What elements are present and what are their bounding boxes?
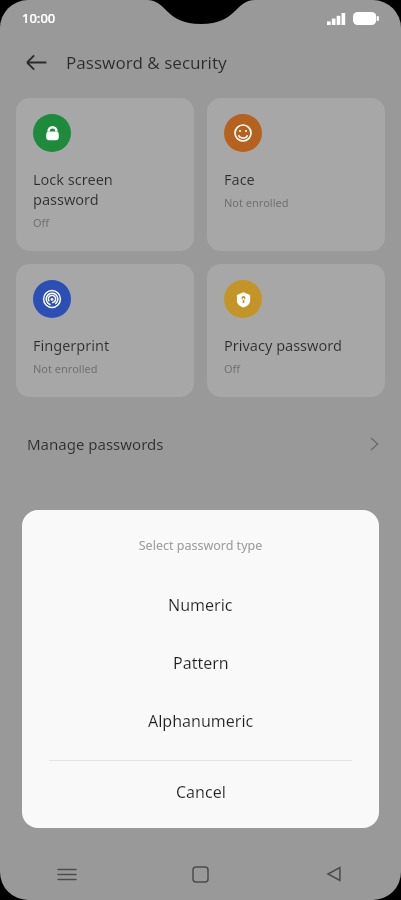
staticText: Privacy password xyxy=(224,335,342,355)
staticText: Off xyxy=(33,215,50,230)
staticText: Not enrolled xyxy=(33,361,98,376)
button[interactable]: Numeric xyxy=(22,576,379,634)
staticText: Lock screen password xyxy=(33,169,113,209)
button[interactable]: Back xyxy=(267,848,401,900)
staticText: Pattern xyxy=(173,652,229,674)
staticText: Off xyxy=(224,361,241,376)
button[interactable]: Recents xyxy=(0,848,133,900)
button[interactable]: Fingerprint xyxy=(16,264,194,397)
button[interactable]: Alphanumeric xyxy=(22,692,379,750)
button[interactable]: Lock screen password xyxy=(16,98,194,251)
staticText: Not enrolled xyxy=(224,195,289,210)
button[interactable]: Home xyxy=(133,848,267,900)
staticText: Cancel xyxy=(176,781,226,803)
staticText: Manage passwords xyxy=(27,434,164,454)
button[interactable]: Face xyxy=(207,98,385,251)
staticText: Face xyxy=(224,169,255,189)
button[interactable]: Manage passwords xyxy=(0,419,401,469)
button[interactable]: Pattern xyxy=(22,634,379,692)
button[interactable]: Privacy password xyxy=(207,264,385,397)
staticText: Select password type xyxy=(22,537,379,554)
staticText: Fingerprint xyxy=(33,335,110,355)
button[interactable]: Back xyxy=(20,46,52,78)
staticText: Alphanumeric xyxy=(148,710,254,732)
staticText: Password & security xyxy=(66,51,227,74)
staticText: Numeric xyxy=(168,594,233,616)
button[interactable]: Cancel xyxy=(22,761,379,823)
staticText: 10:00 xyxy=(22,9,56,27)
